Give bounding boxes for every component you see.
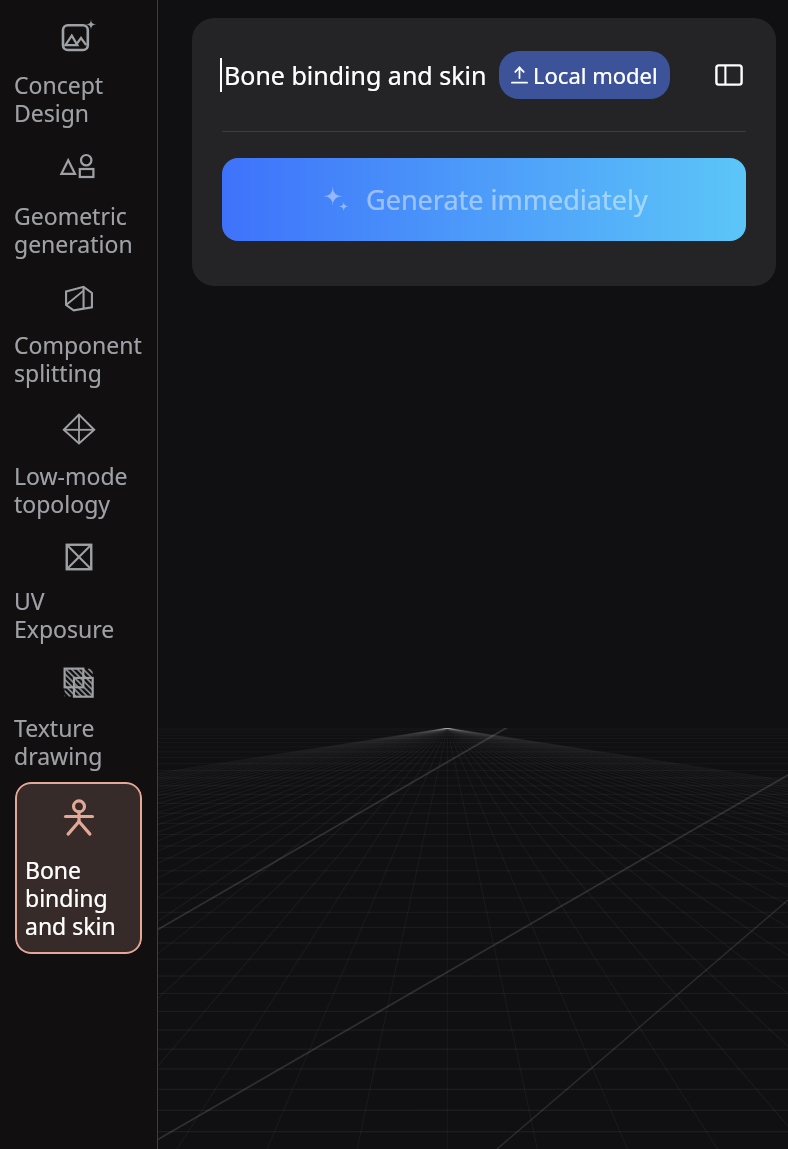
button[interactable]: Generate immediately xyxy=(222,158,746,241)
button[interactable]: Toggle side panel xyxy=(706,52,752,98)
staticText: Generate immediately xyxy=(366,181,648,218)
staticText: Texture drawing xyxy=(14,712,103,772)
staticText: Bone binding and skin xyxy=(25,854,116,942)
staticText: UV Exposure xyxy=(14,585,115,645)
button[interactable]: Concept Design xyxy=(0,0,158,131)
button[interactable]: Bone binding and skin xyxy=(15,782,142,954)
button[interactable]: Geometric generation xyxy=(0,131,158,262)
staticText: Geometric generation xyxy=(14,200,133,260)
staticText: Low-mode topology xyxy=(14,460,128,520)
staticText: Bone binding and skin xyxy=(224,58,487,92)
button[interactable]: UV Exposure xyxy=(0,522,158,647)
staticText: Local model xyxy=(533,60,658,90)
button[interactable]: Texture drawing xyxy=(0,647,158,774)
button[interactable]: Local model xyxy=(499,51,670,99)
button[interactable]: Component splitting xyxy=(0,262,158,391)
staticText: Concept Design xyxy=(14,69,104,129)
button[interactable]: Low-mode topology xyxy=(0,391,158,522)
staticText: Component splitting xyxy=(14,329,142,389)
